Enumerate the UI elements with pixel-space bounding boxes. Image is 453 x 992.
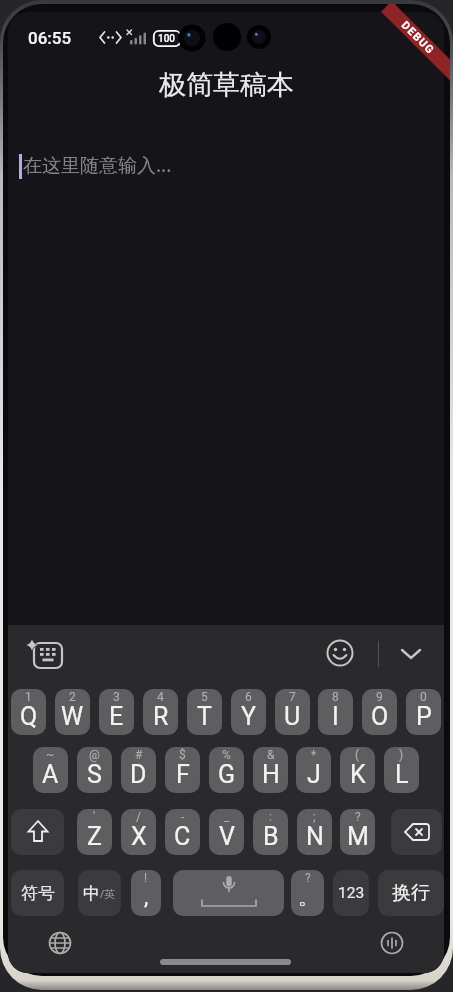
staticText: 。 bbox=[298, 885, 318, 910]
staticText: 3 bbox=[113, 690, 120, 704]
staticText: G bbox=[218, 760, 236, 789]
staticText: C bbox=[174, 822, 191, 851]
staticText: 7 bbox=[289, 690, 296, 704]
staticText: U bbox=[284, 702, 301, 731]
button[interactable]: 9 bbox=[362, 689, 397, 735]
staticText: 2 bbox=[69, 690, 76, 704]
staticText: 换行 bbox=[392, 881, 430, 905]
staticText: _ bbox=[224, 810, 230, 824]
button[interactable]: ? bbox=[291, 870, 324, 916]
staticText: - bbox=[181, 810, 185, 824]
staticText: Z bbox=[87, 822, 102, 851]
staticText: /英 bbox=[100, 886, 116, 901]
staticText: ' bbox=[93, 810, 96, 824]
button[interactable]: ! bbox=[131, 870, 161, 916]
staticText: 8 bbox=[332, 690, 339, 704]
staticText: L bbox=[395, 760, 409, 789]
staticText: S bbox=[87, 760, 102, 789]
button[interactable]: ( bbox=[340, 747, 375, 793]
button[interactable]: 123 bbox=[333, 870, 369, 916]
button[interactable]: 中 bbox=[78, 870, 121, 916]
button[interactable]: @ bbox=[77, 747, 112, 793]
staticText: DEBUG bbox=[399, 19, 438, 58]
button[interactable]: 3 bbox=[99, 689, 134, 735]
button[interactable]: 0 bbox=[406, 689, 441, 735]
button[interactable]: 1 bbox=[11, 689, 46, 735]
button[interactable] bbox=[173, 870, 284, 916]
staticText: Q bbox=[20, 702, 38, 731]
button[interactable]: ; bbox=[297, 809, 332, 855]
staticText: 4 bbox=[157, 690, 164, 704]
button[interactable]: ' bbox=[77, 809, 112, 855]
staticText: D bbox=[130, 760, 147, 789]
staticText: H bbox=[262, 760, 280, 789]
staticText: ( bbox=[355, 748, 360, 762]
staticText: ; bbox=[313, 810, 316, 824]
staticText: O bbox=[371, 702, 389, 731]
button[interactable]: 7 bbox=[275, 689, 310, 735]
button[interactable]: 在这里随意输入... bbox=[8, 142, 444, 602]
staticText: , bbox=[144, 884, 149, 910]
button[interactable] bbox=[24, 637, 66, 671]
staticText: K bbox=[350, 760, 366, 789]
button[interactable]: 5 bbox=[187, 689, 222, 735]
button[interactable]: - bbox=[165, 809, 200, 855]
button[interactable]: $ bbox=[165, 747, 200, 793]
staticText: 符号 bbox=[21, 883, 55, 904]
staticText: # bbox=[135, 748, 143, 762]
staticText: F bbox=[176, 760, 190, 789]
button[interactable]: % bbox=[209, 747, 244, 793]
button[interactable]: 4 bbox=[143, 689, 178, 735]
staticText: 123 bbox=[338, 884, 365, 902]
staticText: / bbox=[136, 810, 141, 824]
staticText: ~ bbox=[46, 748, 55, 762]
staticText: 极简草稿本 bbox=[159, 68, 294, 102]
button[interactable]: ~ bbox=[33, 747, 68, 793]
button[interactable]: 2 bbox=[55, 689, 90, 735]
staticText: $ bbox=[179, 748, 186, 762]
staticText: 5 bbox=[201, 690, 208, 704]
button[interactable]: # bbox=[121, 747, 156, 793]
staticText: W bbox=[61, 702, 84, 731]
staticText: V bbox=[219, 822, 235, 851]
staticText: 06:55 bbox=[28, 28, 72, 48]
button[interactable]: 8 bbox=[318, 689, 353, 735]
button[interactable] bbox=[380, 931, 404, 955]
staticText: 中 bbox=[83, 883, 100, 904]
staticText: N bbox=[306, 822, 324, 851]
button[interactable]: 6 bbox=[231, 689, 266, 735]
button[interactable] bbox=[391, 809, 442, 855]
staticText: 1 bbox=[25, 690, 32, 704]
button[interactable]: * bbox=[296, 747, 331, 793]
button[interactable] bbox=[48, 931, 72, 955]
button[interactable] bbox=[11, 809, 64, 855]
staticText: * bbox=[311, 748, 317, 762]
staticText: T bbox=[197, 702, 212, 731]
button[interactable]: ? bbox=[340, 809, 375, 855]
button[interactable] bbox=[396, 642, 426, 666]
staticText: M bbox=[347, 822, 369, 851]
staticText: 6 bbox=[245, 690, 252, 704]
button[interactable] bbox=[326, 639, 354, 667]
staticText: % bbox=[222, 748, 231, 762]
staticText: R bbox=[153, 702, 169, 731]
staticText: E bbox=[109, 702, 124, 731]
staticText: B bbox=[263, 822, 279, 851]
staticText: 100 bbox=[158, 33, 176, 45]
staticText: Y bbox=[241, 702, 257, 731]
staticText: J bbox=[307, 760, 321, 789]
button[interactable]: _ bbox=[209, 809, 244, 855]
button[interactable]: & bbox=[253, 747, 288, 793]
staticText: 在这里随意输入... bbox=[23, 152, 172, 178]
staticText: ? bbox=[305, 871, 311, 885]
button[interactable]: : bbox=[253, 809, 288, 855]
button[interactable]: 符号 bbox=[11, 870, 64, 916]
staticText: ) bbox=[399, 748, 404, 762]
button[interactable]: 换行 bbox=[378, 870, 444, 916]
staticText: P bbox=[416, 702, 432, 731]
button[interactable]: ) bbox=[384, 747, 419, 793]
staticText: A bbox=[42, 760, 59, 789]
staticText: I bbox=[332, 702, 339, 731]
button[interactable]: / bbox=[121, 809, 156, 855]
staticText: 0 bbox=[420, 690, 427, 704]
